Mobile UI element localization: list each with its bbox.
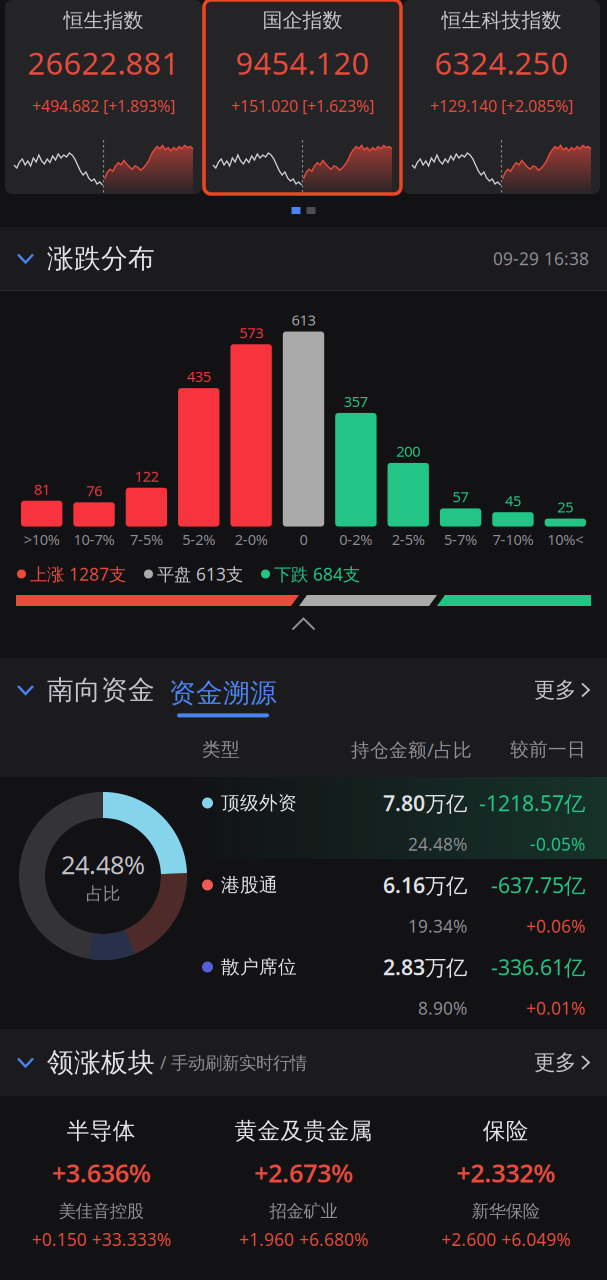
staticText: 恒生指数 [63, 8, 143, 33]
staticText: +2.673% [254, 1156, 353, 1189]
staticText: 5-7% [444, 529, 477, 549]
staticText: +0.01% [526, 996, 585, 1019]
staticText: 恒生科技指数 [441, 8, 561, 33]
staticText: +3.636% [52, 1156, 151, 1189]
staticText: 顶级外资 [221, 791, 297, 814]
staticText: 6.16万亿 [383, 871, 467, 899]
staticText: 半导体 [67, 1117, 136, 1145]
staticText: 黄金及贵金属 [234, 1117, 372, 1145]
staticText: 81 [34, 479, 50, 499]
staticText: +2.332% [456, 1156, 555, 1189]
staticText: 435 [187, 367, 211, 386]
staticText: 7-10% [492, 529, 533, 549]
button[interactable]: 港股通 [194, 859, 607, 941]
staticText: 更多 [534, 1049, 576, 1076]
staticText: >10% [24, 529, 60, 549]
button[interactable]: 黄金及贵金属 [202, 1117, 405, 1251]
staticText: 10-7% [73, 529, 114, 549]
staticText: 7-5% [130, 529, 163, 549]
staticText: 8.90% [418, 996, 467, 1019]
staticText: +2.600 +6.049% [441, 1228, 570, 1251]
staticText: 港股通 [221, 873, 278, 896]
staticText: +151.020 [+1.623%] [231, 95, 374, 116]
staticText: 更多 [534, 677, 576, 703]
staticText: 散户席位 [221, 955, 297, 978]
staticText: 25 [557, 497, 573, 517]
button[interactable]: 南向资金 [18, 674, 155, 706]
staticText: 45 [505, 491, 521, 510]
staticText: +494.682 [+1.893%] [32, 95, 175, 116]
staticText: 0-2% [339, 529, 372, 549]
staticText: +0.150 +33.333% [32, 1228, 171, 1251]
staticText: 美佳音控股 [59, 1200, 144, 1222]
staticText: 0 [299, 529, 307, 549]
staticText: 7.80万亿 [383, 789, 467, 817]
staticText: 领涨板块 [47, 1046, 155, 1079]
staticText: 上涨 1287支 [30, 562, 126, 585]
staticText: 占比 [86, 883, 120, 904]
button[interactable]: 更多 [534, 677, 589, 703]
staticText: 573 [239, 323, 263, 342]
staticText: / 手动刷新实时行情 [160, 1051, 307, 1074]
staticText: +1.960 +6.680% [239, 1228, 368, 1251]
staticText: 南向资金 [47, 674, 155, 706]
staticText: -0.05% [530, 832, 585, 855]
staticText: 保险 [483, 1117, 529, 1145]
staticText: 类型 [202, 738, 240, 761]
staticText: +129.140 [+2.085%] [430, 95, 573, 116]
staticText: 24.48% [408, 832, 467, 855]
button[interactable]: 国企指数 [204, 0, 401, 194]
staticText: 122 [134, 466, 158, 486]
staticText: 613 [291, 310, 315, 329]
button[interactable]: 保险 [405, 1117, 607, 1251]
staticText: 76 [86, 481, 102, 500]
staticText: 9454.120 [235, 43, 369, 83]
staticText: 2-0% [235, 529, 268, 549]
button[interactable]: 更多 [534, 1049, 589, 1076]
staticText: 下跌 684支 [274, 562, 360, 585]
staticText: 5-2% [182, 529, 215, 549]
staticText: 357 [344, 391, 368, 411]
staticText: 持仓金额/占比 [351, 737, 472, 762]
staticText: 资金溯源 [169, 677, 277, 709]
staticText: 涨跌分布 [47, 242, 155, 275]
button[interactable]: 涨跌分布 [18, 242, 155, 275]
staticText: 57 [453, 487, 469, 506]
staticText: 新华保险 [472, 1200, 540, 1222]
staticText: 较前一日 [510, 738, 586, 761]
button[interactable]: 散户席位 [194, 941, 607, 1023]
staticText: 招金矿业 [269, 1200, 337, 1222]
staticText: 2.83万亿 [383, 953, 467, 981]
button[interactable]: 顶级外资 [194, 777, 607, 859]
button[interactable]: 资金溯源 [155, 663, 277, 717]
staticText: -1218.57亿 [479, 789, 585, 817]
staticText: -637.75亿 [491, 871, 585, 899]
staticText: 6324.250 [434, 43, 568, 83]
button[interactable]: 领涨板块 [18, 1046, 155, 1079]
button[interactable]: Collapse [0, 606, 607, 642]
button[interactable]: 恒生科技指数 [403, 0, 600, 194]
staticText: 2-5% [392, 529, 425, 549]
staticText: 09-29 16:38 [493, 247, 589, 270]
staticText: -336.61亿 [491, 953, 585, 981]
staticText: 19.34% [408, 914, 467, 937]
button[interactable]: 半导体 [0, 1117, 202, 1251]
staticText: 10%< [547, 529, 583, 549]
staticText: 200 [396, 441, 420, 461]
staticText: 24.48% [61, 847, 145, 881]
button[interactable]: 恒生指数 [5, 0, 202, 194]
staticText: 26622.881 [27, 43, 179, 83]
staticText: 国企指数 [262, 8, 342, 33]
staticText: 平盘 613支 [157, 562, 243, 585]
staticText: +0.06% [526, 914, 585, 937]
